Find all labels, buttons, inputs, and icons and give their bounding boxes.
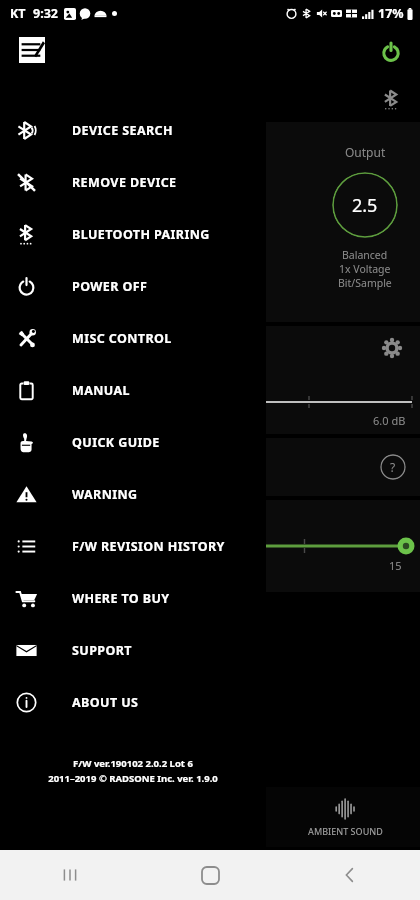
button[interactable]: ABOUT US — [0, 676, 266, 728]
staticText: 9:32 — [33, 5, 58, 22]
staticText: MISC CONTROL — [72, 330, 172, 347]
button[interactable]: Open navigation drawer — [12, 30, 52, 70]
staticText: AMBIENT SOUND — [308, 825, 383, 837]
button[interactable]: QUICK GUIDE — [0, 416, 266, 468]
button[interactable]: Home — [140, 850, 280, 900]
staticText: REMOVE DEVICE — [72, 174, 177, 191]
staticText: ABOUT US — [72, 694, 139, 711]
staticText: DEVICE SEARCH — [72, 122, 173, 139]
staticText: WARNING — [72, 486, 138, 503]
staticText: QUICK GUIDE — [72, 434, 160, 451]
button[interactable]: MANUAL — [0, 364, 266, 416]
staticText: 17% — [378, 5, 404, 22]
staticText: BLUETOOTH PAIRING — [72, 226, 210, 243]
button[interactable]: POWER OFF — [0, 260, 266, 312]
button[interactable]: BLUETOOTH PAIRING — [0, 208, 266, 260]
staticText: ? — [390, 459, 396, 475]
staticText: SUPPORT — [72, 642, 132, 659]
staticText: Balanced — [342, 248, 388, 262]
button[interactable]: Back — [280, 850, 420, 900]
button[interactable]: Help — [380, 454, 406, 480]
staticText: 1x Voltage — [339, 262, 391, 276]
button[interactable]: REMOVE DEVICE — [0, 156, 266, 208]
button[interactable]: WHERE TO BUY — [0, 572, 266, 624]
button[interactable] — [170, 198, 232, 244]
staticText: 6.0 dB — [373, 413, 406, 428]
button[interactable]: WARNING — [0, 468, 266, 520]
button[interactable]: SUPPORT — [0, 624, 266, 676]
button[interactable]: F/W REVISION HISTORY — [0, 520, 266, 572]
button[interactable]: DEVICE SEARCH — [0, 104, 266, 156]
other: Bluetooth — [380, 89, 402, 111]
staticText: KT — [10, 5, 26, 22]
button[interactable]: MISC CONTROL — [0, 312, 266, 364]
staticText: WHERE TO BUY — [72, 590, 170, 607]
staticText: 2.5 — [352, 193, 378, 218]
staticText: MANUAL — [72, 382, 130, 399]
staticText: F/W REVISION HISTORY — [72, 538, 225, 555]
button[interactable]: 2.5 — [332, 172, 398, 238]
button[interactable]: Power — [376, 37, 406, 67]
staticText: 2011–2019 © RADSONE Inc. ver. 1.9.0 — [48, 772, 218, 785]
button[interactable]: Settings — [378, 334, 406, 362]
staticText: 15 — [389, 558, 402, 573]
staticText: Output — [345, 144, 386, 160]
staticText: POWER OFF — [72, 278, 148, 295]
button[interactable]: AMBIENT SOUND — [270, 787, 420, 847]
staticText: F/W ver.190102 2.0.2 Lot 6 — [73, 757, 193, 770]
button[interactable]: Recents — [0, 850, 140, 900]
staticText: Bit/Sample — [338, 276, 392, 290]
